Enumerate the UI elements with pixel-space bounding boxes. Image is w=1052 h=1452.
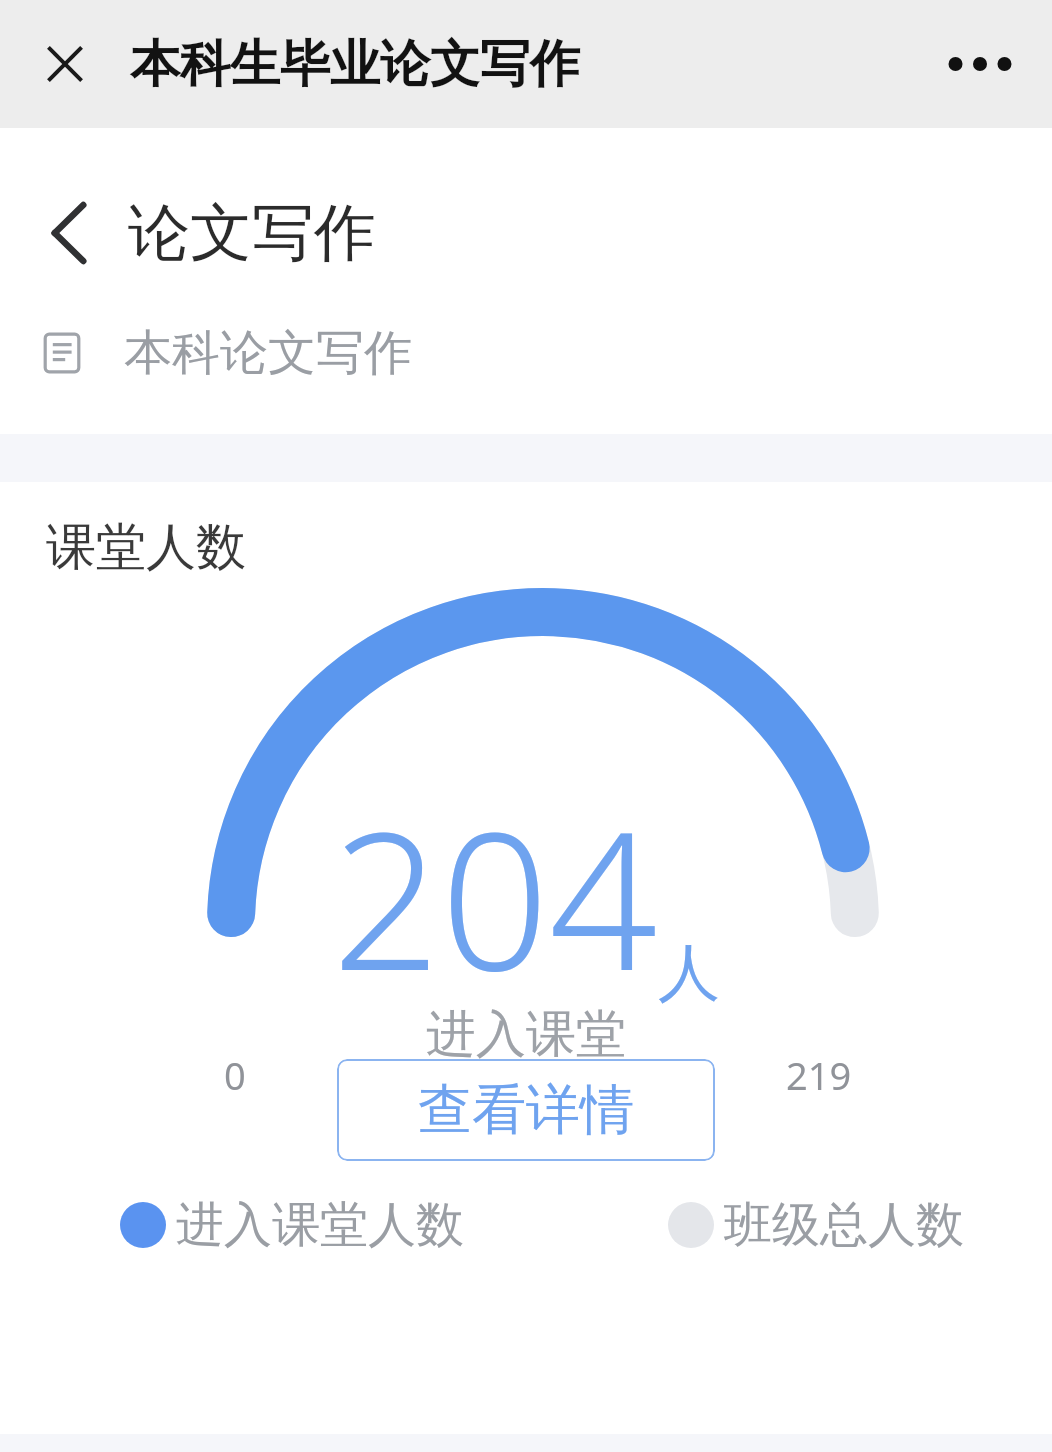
button[interactable]: Back: [34, 198, 104, 268]
staticText: 课堂人数: [46, 516, 246, 579]
button[interactable]: Close: [34, 33, 96, 95]
button[interactable]: 查看详情: [337, 1059, 715, 1161]
staticText: 204: [332, 767, 658, 1026]
staticText: 人: [658, 934, 720, 1012]
staticText: 进入课堂: [426, 1003, 626, 1066]
staticText: 班级总人数: [724, 1195, 964, 1255]
staticText: 本科生毕业论文写作: [130, 33, 580, 96]
staticText: 219: [786, 1049, 852, 1101]
staticText: 进入课堂人数: [176, 1195, 464, 1255]
staticText: 本科论文写作: [124, 323, 412, 383]
staticText: 查看详情: [418, 1076, 634, 1144]
button[interactable]: More options: [930, 19, 1030, 109]
staticText: 0: [224, 1049, 246, 1101]
staticText: 论文写作: [128, 194, 376, 272]
